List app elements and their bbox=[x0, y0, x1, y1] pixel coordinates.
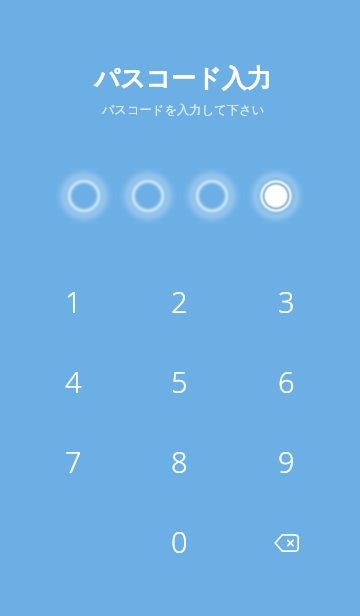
staticText: 0 bbox=[171, 522, 188, 561]
button[interactable]: 4 bbox=[20, 341, 126, 421]
staticText: 2 bbox=[171, 282, 188, 321]
button[interactable]: 9 bbox=[233, 421, 340, 501]
button[interactable]: 7 bbox=[20, 421, 126, 501]
button[interactable]: 2 bbox=[126, 261, 233, 341]
staticText: 6 bbox=[278, 362, 295, 401]
staticText: 3 bbox=[278, 282, 295, 321]
button[interactable]: 5 bbox=[126, 341, 233, 421]
staticText: 4 bbox=[65, 362, 82, 401]
button[interactable]: 3 bbox=[233, 261, 340, 341]
button[interactable]: 8 bbox=[126, 421, 233, 501]
button[interactable]: 1 bbox=[20, 261, 126, 341]
button[interactable]: 6 bbox=[233, 341, 340, 421]
staticText: 8 bbox=[171, 442, 188, 481]
button[interactable]: Delete bbox=[233, 501, 340, 581]
staticText: 1 bbox=[65, 282, 82, 321]
staticText: パスコード入力 bbox=[3, 63, 360, 94]
other: Delete bbox=[269, 526, 303, 560]
staticText: 7 bbox=[65, 442, 82, 481]
button[interactable]: 0 bbox=[126, 501, 233, 581]
staticText: 5 bbox=[171, 362, 188, 401]
staticText: 9 bbox=[278, 442, 295, 481]
staticText: パスコードを入力して下さい bbox=[3, 102, 360, 117]
